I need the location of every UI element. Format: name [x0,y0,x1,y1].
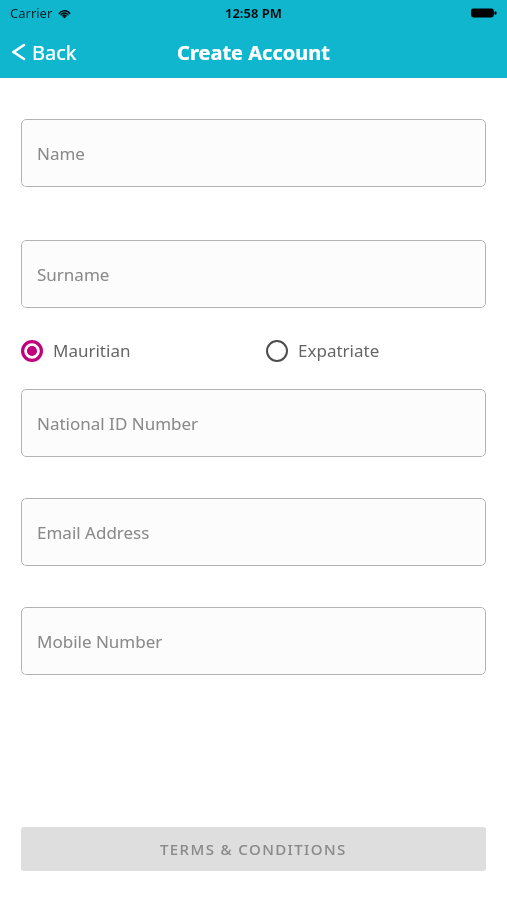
button[interactable]: National ID Number [21,389,486,457]
button[interactable]: Email Address [21,498,486,566]
staticText: Create Account [177,39,330,66]
button[interactable]: Back [0,26,89,78]
staticText: TERMS & CONDITIONS [160,839,347,859]
button[interactable]: TERMS & CONDITIONS [21,827,486,871]
button[interactable]: Name [21,119,486,187]
staticText: Mauritian [53,339,131,362]
staticText: Mobile Number [37,630,163,653]
staticText: Surname [37,263,110,286]
staticText: National ID Number [37,412,199,435]
staticText: Carrier [10,4,53,22]
staticText: Email Address [37,521,150,544]
staticText: Name [37,142,85,165]
button[interactable]: Mauritian [21,333,196,368]
staticText: Back [32,39,77,66]
staticText: 12:58 PM [225,4,283,22]
staticText: Expatriate [298,339,380,362]
button[interactable]: Surname [21,240,486,308]
button[interactable]: Mobile Number [21,607,486,675]
button[interactable]: Expatriate [266,333,380,368]
